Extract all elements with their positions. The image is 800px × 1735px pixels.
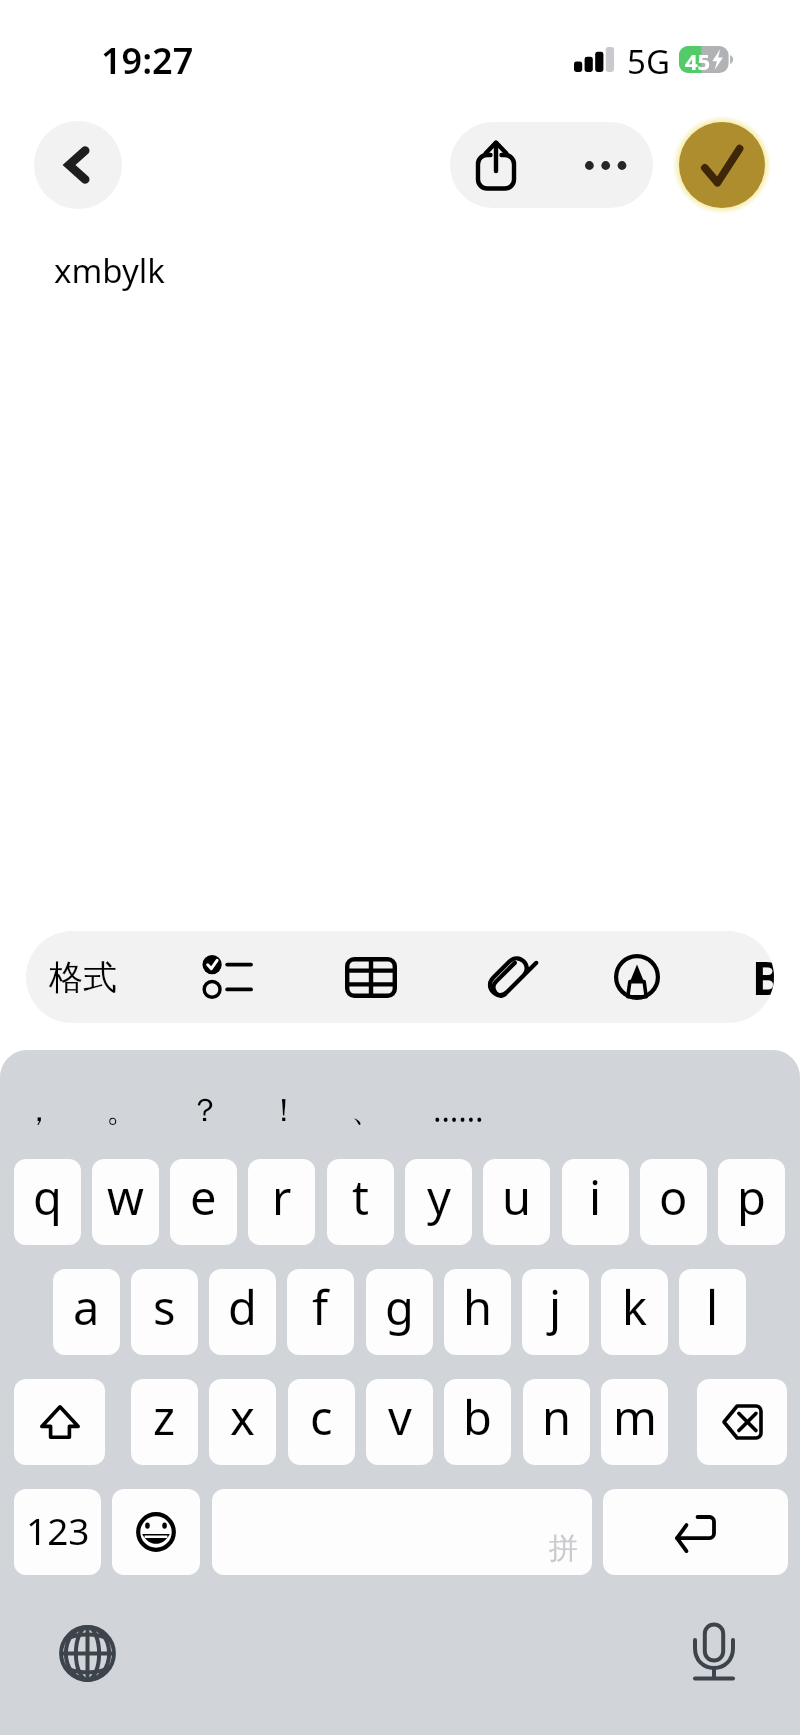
staticText: …… [433,1088,484,1132]
button[interactable]: 、 [327,1084,407,1136]
staticText: a [73,1275,100,1339]
button[interactable]: h [444,1269,511,1355]
staticText: w [107,1165,144,1229]
button[interactable]: a [53,1269,120,1355]
staticText: i [589,1165,602,1229]
staticText: 、 [351,1090,383,1130]
staticText: z [153,1385,176,1449]
button[interactable]: y [405,1159,472,1245]
button[interactable]: r [248,1159,315,1245]
button[interactable]: w [92,1159,159,1245]
button[interactable]: Backspace [697,1379,787,1465]
button[interactable]: Bold [752,931,774,1023]
button[interactable]: Emoji [112,1489,200,1575]
button[interactable]: ！ [244,1084,324,1136]
staticText: 19:27 [101,36,194,85]
staticText: e [190,1165,217,1229]
button[interactable]: Back [34,121,122,209]
button[interactable]: e [170,1159,237,1245]
button[interactable]: 格式 [26,931,143,1023]
button[interactable]: ， [0,1084,79,1136]
button[interactable]: l [679,1269,746,1355]
button[interactable]: z [131,1379,198,1465]
staticText: 5G [627,39,670,84]
staticText: 123 [26,1505,90,1555]
button[interactable]: Done [679,122,765,208]
button[interactable]: v [366,1379,433,1465]
button[interactable]: Dictation [679,1618,749,1688]
staticText: f [312,1275,329,1339]
button[interactable]: u [483,1159,550,1245]
staticText: o [659,1165,688,1229]
staticText: xmbylk [54,248,165,293]
staticText: q [33,1165,62,1229]
button[interactable]: Attach [448,931,568,1023]
staticText: r [272,1165,292,1229]
button[interactable]: …… [418,1084,498,1136]
button[interactable]: q [14,1159,81,1245]
button[interactable]: b [444,1379,511,1465]
staticText: s [153,1275,176,1339]
button[interactable]: j [522,1269,589,1355]
button[interactable]: d [209,1269,276,1355]
button[interactable]: 。 [82,1084,162,1136]
button[interactable]: Return [603,1489,788,1575]
staticText: p [737,1165,766,1229]
staticText: x [230,1385,255,1449]
button[interactable]: Change language [52,1618,122,1688]
button[interactable]: t [327,1159,394,1245]
button[interactable]: More options [557,122,653,208]
staticText: m [613,1385,657,1449]
staticText: b [463,1385,492,1449]
staticText: h [463,1275,493,1339]
button[interactable]: Table [311,931,431,1023]
staticText: g [385,1275,414,1339]
button[interactable]: g [366,1269,433,1355]
staticText: 。 [106,1090,138,1130]
button[interactable]: ？ [165,1084,245,1136]
staticText: k [622,1275,648,1339]
staticText: ！ [268,1090,300,1130]
button[interactable]: n [523,1379,590,1465]
button[interactable]: c [288,1379,355,1465]
staticText: ， [23,1090,55,1130]
button[interactable]: Share [450,122,541,208]
staticText: t [352,1165,369,1229]
staticText: v [388,1385,412,1449]
button[interactable]: f [287,1269,354,1355]
staticText: d [228,1275,257,1339]
staticText: l [706,1275,719,1339]
button[interactable]: Checklist [165,931,287,1023]
button[interactable]: s [131,1269,198,1355]
staticText: u [502,1165,532,1229]
staticText: y [427,1165,451,1229]
staticText: j [549,1275,562,1339]
button[interactable]: o [640,1159,707,1245]
button[interactable]: x [209,1379,276,1465]
staticText: 拼 [549,1530,578,1567]
button[interactable]: k [601,1269,668,1355]
staticText: B [752,946,774,1009]
button[interactable]: i [562,1159,629,1245]
button[interactable]: m [601,1379,668,1465]
staticText: 格式 [49,956,117,999]
staticText: c [310,1385,333,1449]
staticText: n [542,1385,572,1449]
button[interactable]: Shift [14,1379,105,1465]
button[interactable]: p [718,1159,785,1245]
button[interactable]: 拼 [212,1489,592,1575]
button[interactable]: Markup [577,931,697,1023]
staticText: ？ [189,1090,221,1130]
button[interactable]: 123 [14,1489,101,1575]
staticText: 45 [685,46,711,73]
